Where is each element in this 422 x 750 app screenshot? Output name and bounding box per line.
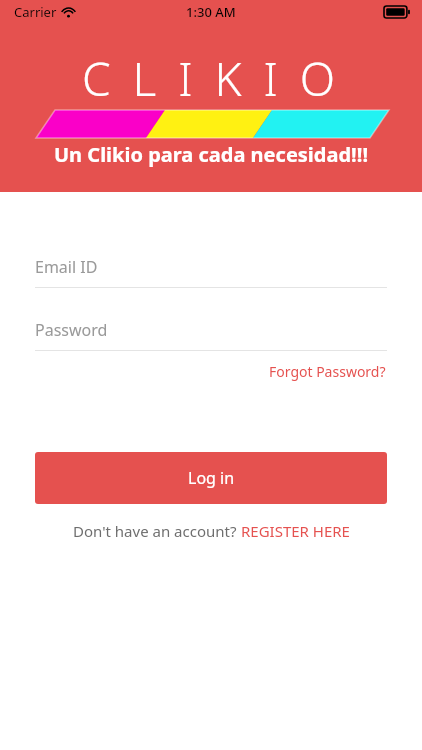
other: Battery full [384,6,410,18]
button[interactable]: Password [35,319,387,351]
staticText: Don't have an account? [73,521,241,541]
staticText: Un Clikio para cada necesidad!!! [0,141,422,168]
staticText: C L I K I O [0,47,422,110]
button[interactable]: Log in [35,452,387,504]
staticText: Forgot Password? [269,362,386,381]
staticText: Log in [188,467,235,489]
staticText: Password [35,319,108,341]
button[interactable]: REGISTER HERE [241,521,350,541]
other: Wi-Fi signal [62,6,75,19]
button[interactable]: Forgot Password? [268,359,387,384]
staticText: Email ID [35,256,98,278]
staticText: REGISTER HERE [241,521,350,541]
staticText: Carrier [14,3,57,21]
button[interactable]: Email ID [35,256,387,288]
staticText: 1:30 AM [186,3,236,21]
